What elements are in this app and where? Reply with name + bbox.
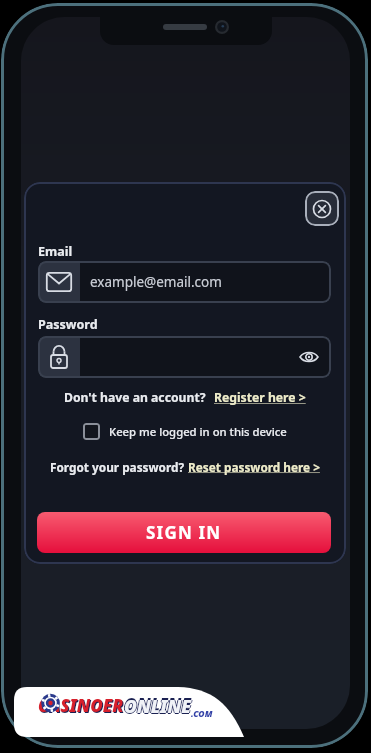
button[interactable]: Reset password here > bbox=[188, 459, 320, 475]
staticText: .COM bbox=[191, 708, 213, 720]
staticText: example@email.com bbox=[90, 273, 222, 291]
button[interactable]: SIGN IN bbox=[37, 512, 331, 553]
button[interactable]: example@email.com bbox=[38, 261, 331, 303]
staticText: Reset password here > bbox=[188, 459, 320, 475]
staticText: Register here > bbox=[214, 389, 306, 406]
staticText: CASINOER bbox=[38, 694, 124, 717]
button[interactable] bbox=[305, 191, 339, 226]
staticText: ONLINE bbox=[124, 692, 192, 716]
staticText: Keep me logged in on this device bbox=[109, 424, 287, 439]
staticText: ONLINE bbox=[124, 695, 192, 719]
button[interactable] bbox=[38, 336, 319, 378]
staticText: CASINOER bbox=[39, 695, 125, 718]
button[interactable]: Keep me logged in on this device bbox=[24, 423, 346, 440]
staticText: Email bbox=[38, 243, 73, 260]
button[interactable] bbox=[38, 336, 331, 378]
staticText: Forgot your password? bbox=[50, 459, 188, 475]
staticText: ONLINE bbox=[125, 694, 193, 718]
staticText: Password bbox=[38, 316, 98, 333]
staticText: ONLINE bbox=[124, 694, 192, 718]
staticText: Don't have an account? bbox=[64, 389, 206, 406]
staticText: ONLINE bbox=[123, 694, 191, 718]
staticText: SIGN IN bbox=[146, 521, 222, 544]
button[interactable]: Register here > bbox=[214, 389, 306, 406]
